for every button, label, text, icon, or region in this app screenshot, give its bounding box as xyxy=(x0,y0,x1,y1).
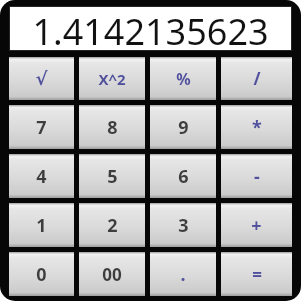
staticText: 1.4142135623 xyxy=(32,7,269,50)
staticText: 9 xyxy=(178,115,189,140)
button[interactable]: 5 xyxy=(79,154,145,198)
staticText: 8 xyxy=(107,115,118,140)
staticText: 1 xyxy=(36,213,47,238)
button[interactable]: 1 xyxy=(9,203,74,247)
staticText: 7 xyxy=(36,115,47,140)
button[interactable]: Percent xyxy=(150,57,216,100)
button[interactable]: Divide xyxy=(221,57,292,100)
staticText: X^2 xyxy=(98,69,126,89)
button[interactable]: Plus xyxy=(221,203,292,247)
button[interactable]: Decimal point xyxy=(150,252,216,296)
staticText: √ xyxy=(35,68,48,89)
staticText: 6 xyxy=(178,164,189,189)
staticText: 0 xyxy=(36,262,47,287)
staticText: 3 xyxy=(178,213,189,238)
button[interactable]: 9 xyxy=(150,105,216,149)
staticText: 4 xyxy=(36,164,47,189)
button[interactable]: 6 xyxy=(150,154,216,198)
button[interactable]: 0 xyxy=(9,252,74,296)
button[interactable]: Multiply xyxy=(221,105,292,149)
staticText: 2 xyxy=(107,213,118,238)
button[interactable]: Square root xyxy=(9,57,74,100)
staticText: + xyxy=(251,213,262,238)
button[interactable]: 4 xyxy=(9,154,74,198)
button[interactable]: X^2 xyxy=(79,57,145,100)
button[interactable]: 7 xyxy=(9,105,74,149)
staticText: * xyxy=(252,115,262,140)
staticText: 00 xyxy=(102,263,122,286)
button[interactable]: Minus xyxy=(221,154,292,198)
staticText: % xyxy=(176,68,191,90)
staticText: / xyxy=(253,67,261,90)
staticText: 5 xyxy=(107,164,118,189)
staticText: - xyxy=(254,164,260,189)
button[interactable]: 3 xyxy=(150,203,216,247)
button[interactable]: 00 xyxy=(79,252,145,296)
staticText: = xyxy=(252,263,262,286)
button[interactable]: 8 xyxy=(79,105,145,149)
button[interactable]: Equals xyxy=(221,252,292,296)
staticText: . xyxy=(180,262,186,287)
button[interactable]: 2 xyxy=(79,203,145,247)
